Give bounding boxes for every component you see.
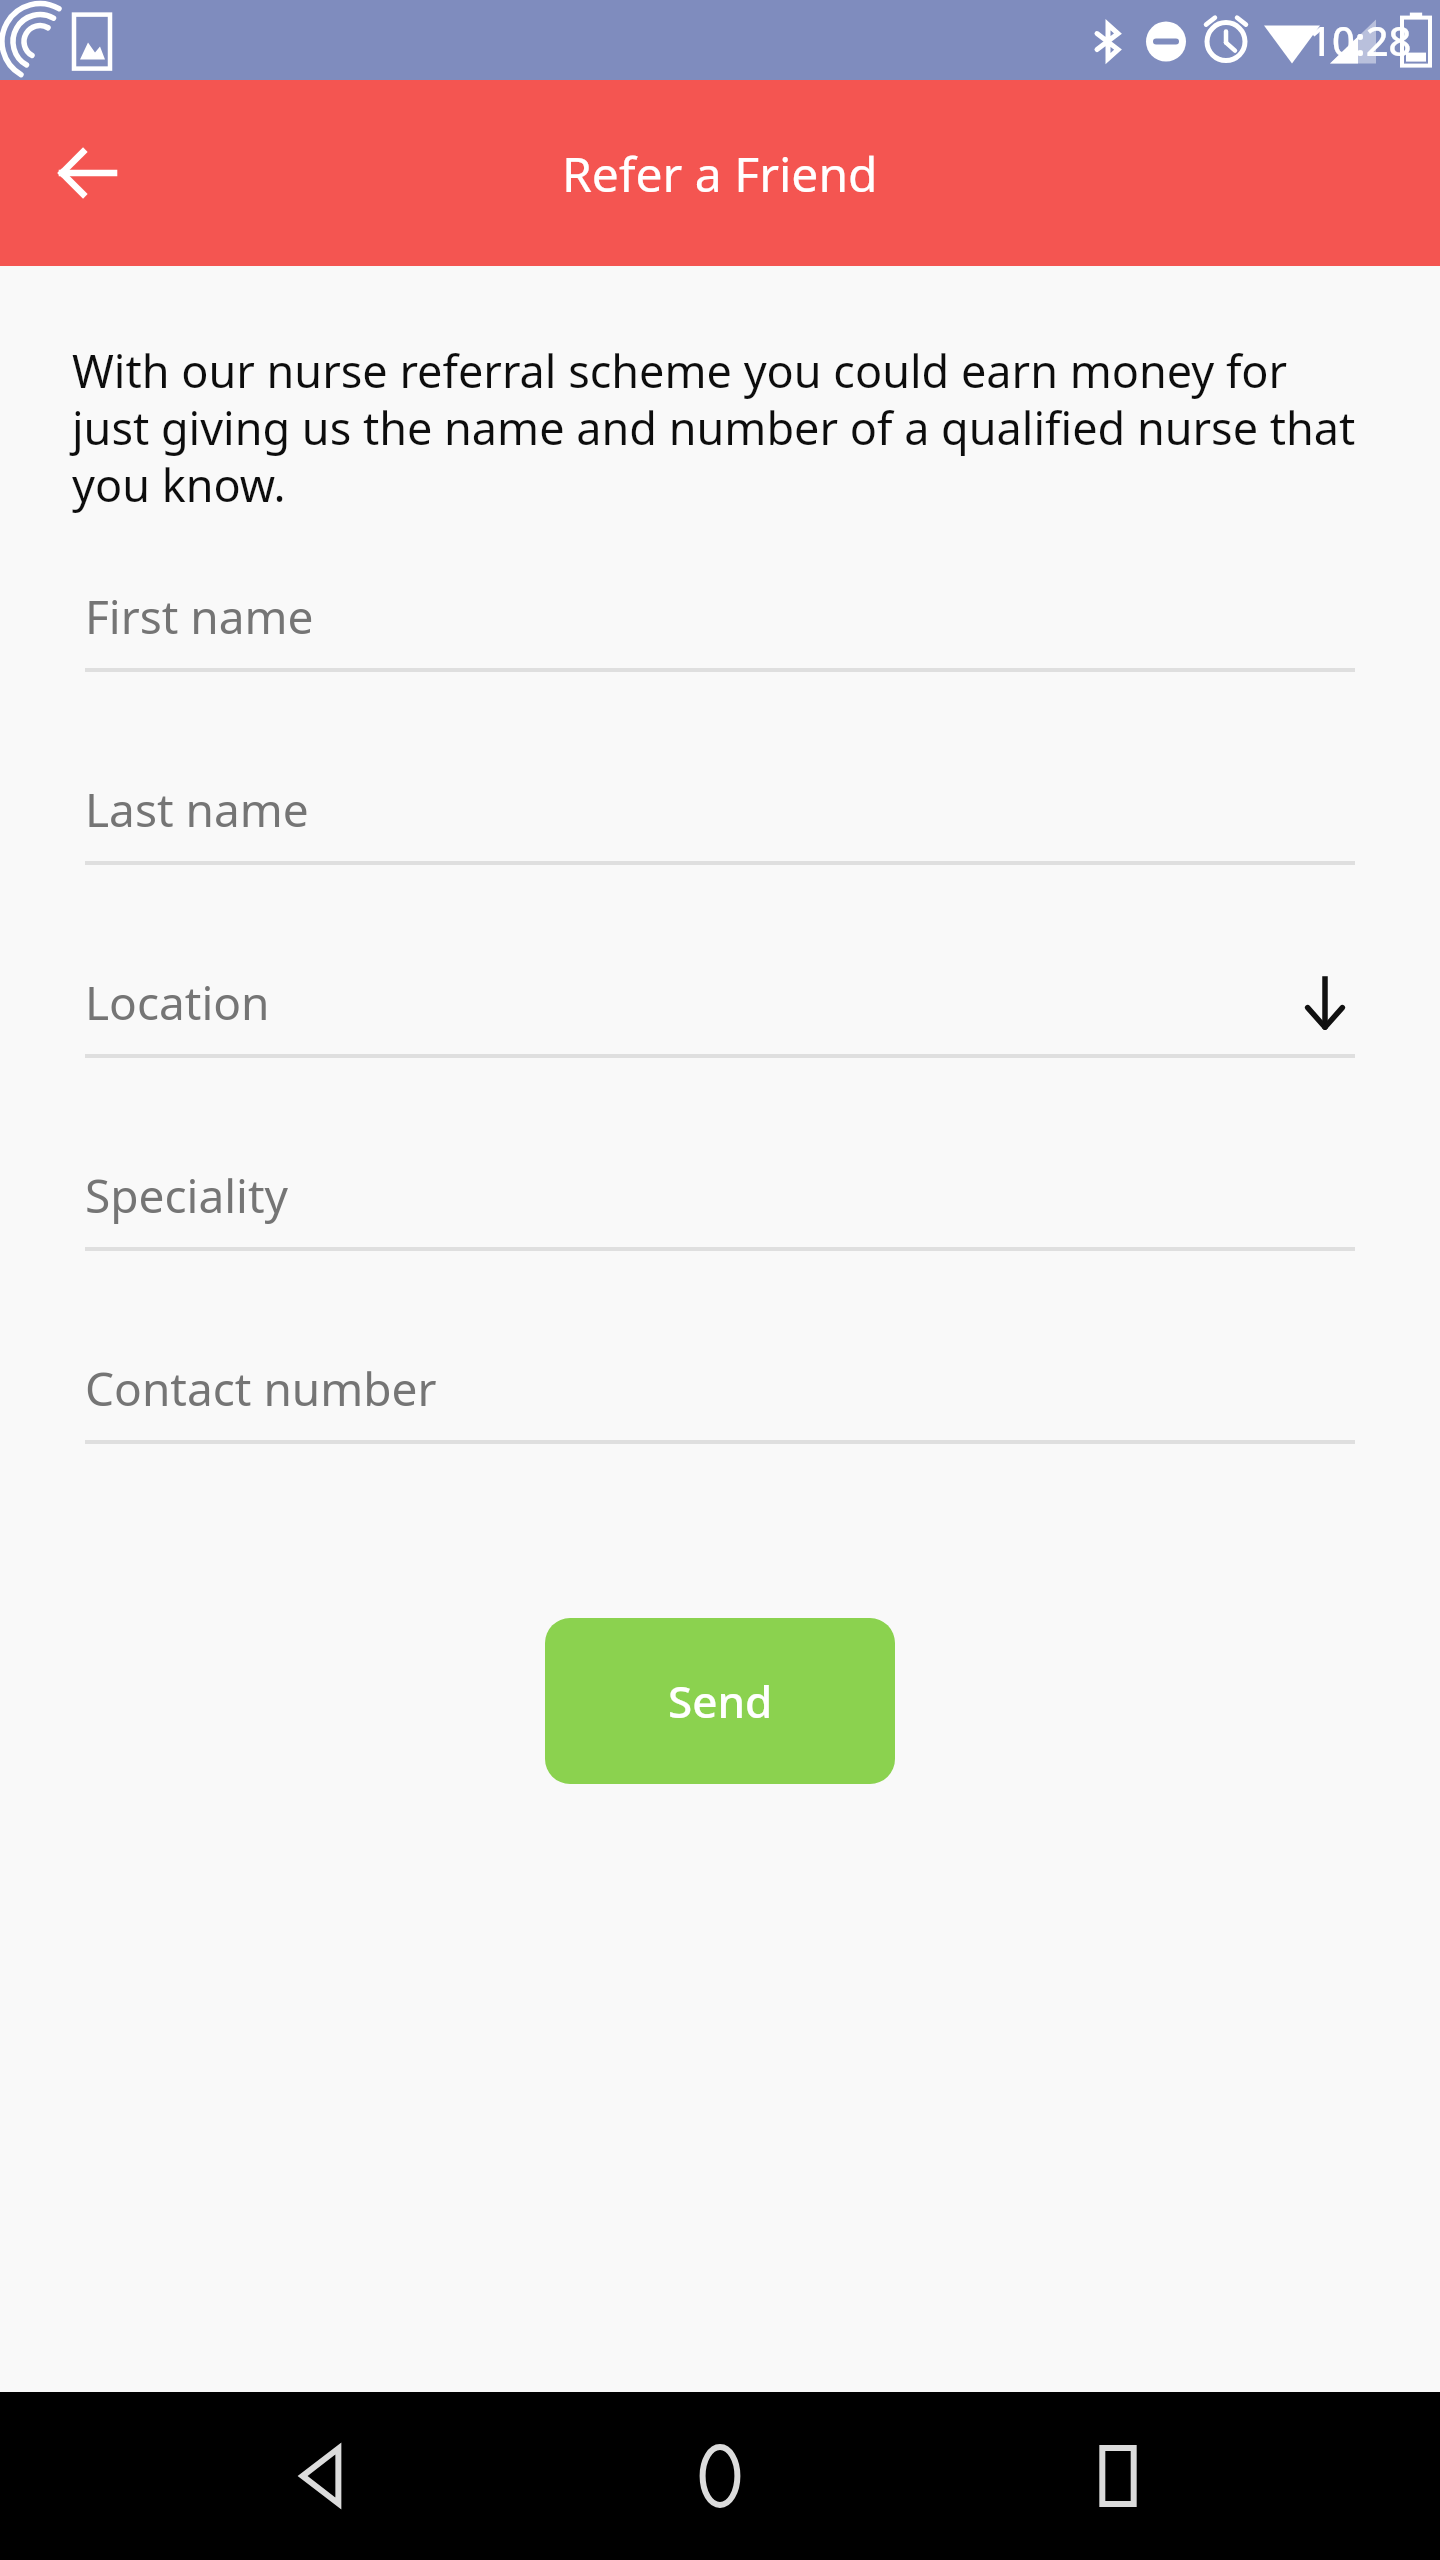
button[interactable]: Send <box>545 1618 895 1784</box>
staticText: Refer a Friend <box>562 141 878 206</box>
button[interactable]: Last name <box>0 744 1440 937</box>
button[interactable]: Recent apps <box>1043 2401 1193 2551</box>
staticText: Location <box>85 971 270 1034</box>
button[interactable]: Back <box>28 113 148 233</box>
button[interactable]: Back <box>248 2401 398 2551</box>
staticText: Contact number <box>85 1357 437 1420</box>
button[interactable]: Location <box>0 937 1440 1130</box>
button[interactable]: Contact number <box>0 1323 1440 1516</box>
staticText: Send <box>668 1671 773 1731</box>
button[interactable]: Speciality <box>0 1130 1440 1323</box>
staticText: First name <box>85 585 314 648</box>
staticText: Speciality <box>85 1164 289 1227</box>
button[interactable]: Open location list <box>1280 957 1370 1047</box>
staticText: With our nurse referral scheme you could… <box>72 340 1362 515</box>
button[interactable]: Home <box>645 2401 795 2551</box>
staticText: Last name <box>85 778 309 841</box>
button[interactable]: First name <box>0 551 1440 744</box>
staticText: 10:28 <box>1309 13 1412 67</box>
